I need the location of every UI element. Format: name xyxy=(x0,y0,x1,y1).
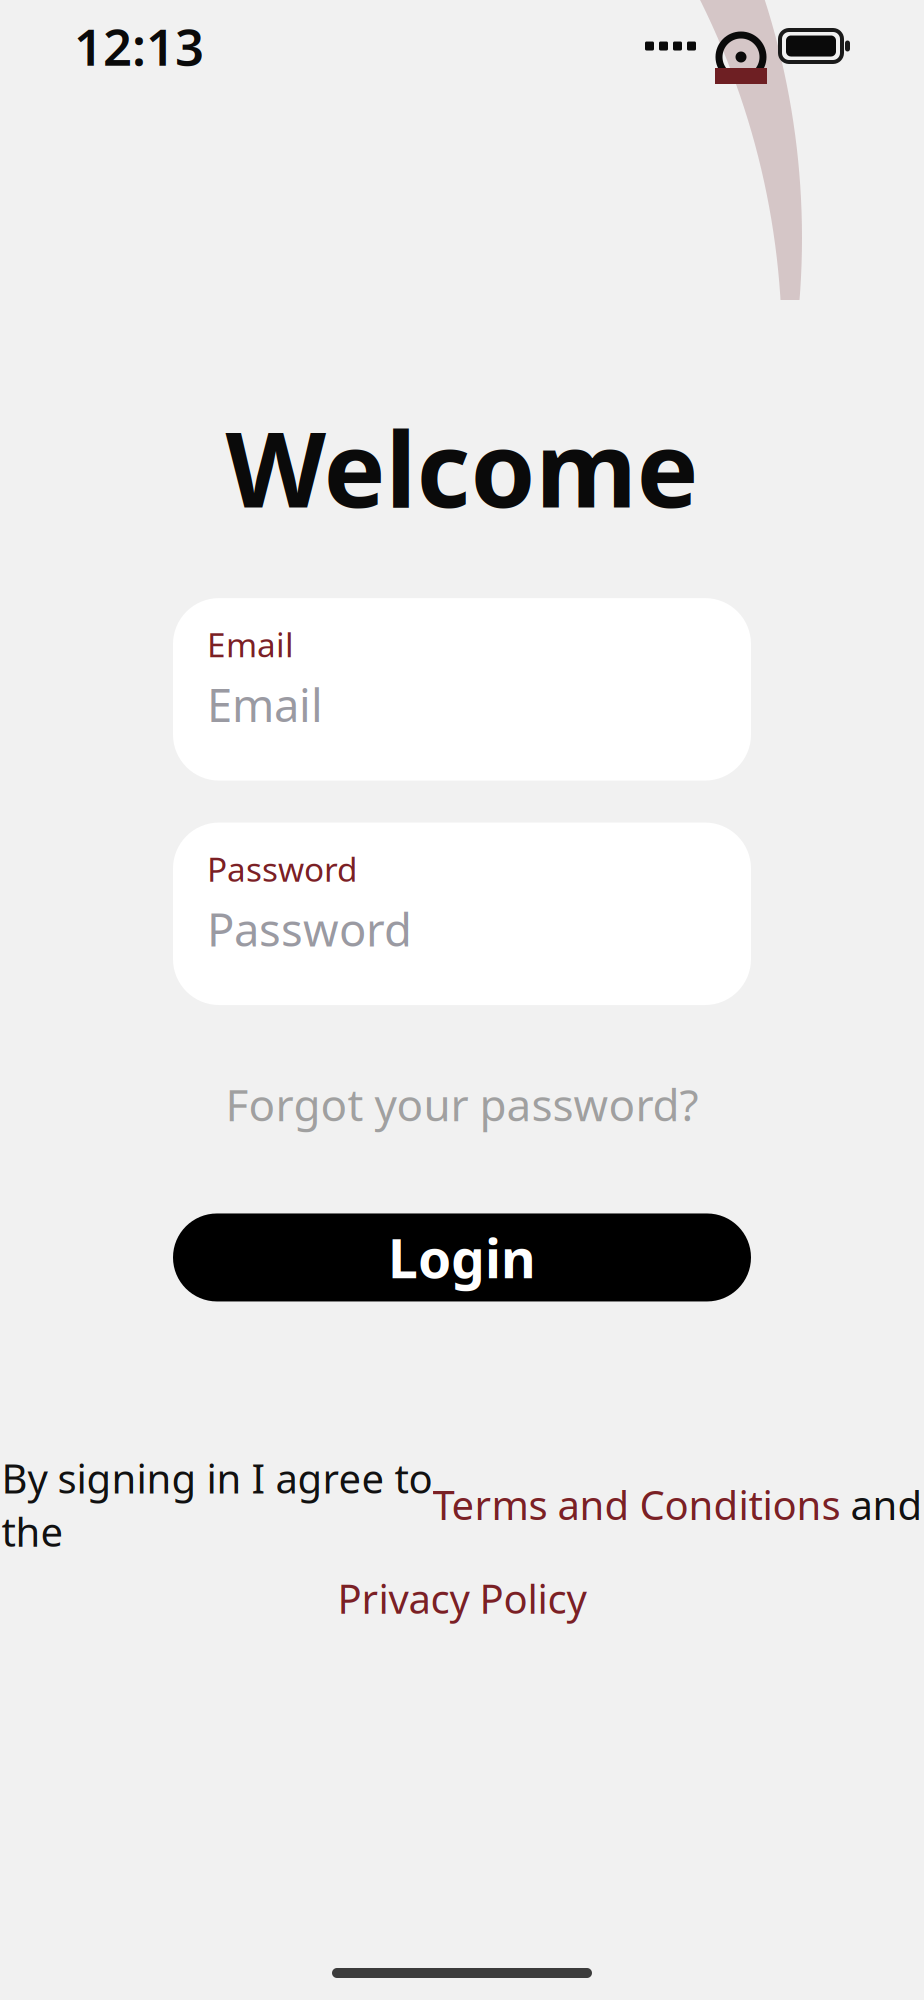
staticText: Login xyxy=(388,1222,536,1293)
staticText: Password xyxy=(207,899,412,959)
staticText: Email xyxy=(207,622,294,666)
button[interactable]: Password xyxy=(173,823,751,1005)
staticText: Forgot your password? xyxy=(225,1075,698,1133)
staticText: Privacy Policy xyxy=(337,1572,586,1625)
staticText: Terms and Conditions xyxy=(432,1478,840,1531)
staticText: Welcome xyxy=(225,398,698,536)
staticText: Password xyxy=(207,847,358,891)
staticText: By signing in I agree to the xyxy=(1,1451,432,1558)
button[interactable]: Forgot your password? xyxy=(207,1067,716,1141)
button[interactable]: Login xyxy=(173,1213,751,1301)
button[interactable]: Privacy Policy xyxy=(337,1572,586,1625)
staticText: Email xyxy=(207,674,323,735)
button[interactable]: Terms and Conditions xyxy=(432,1478,840,1531)
staticText: 12:13 xyxy=(74,12,204,80)
button[interactable]: Email xyxy=(173,598,751,781)
staticText: and xyxy=(840,1478,922,1531)
